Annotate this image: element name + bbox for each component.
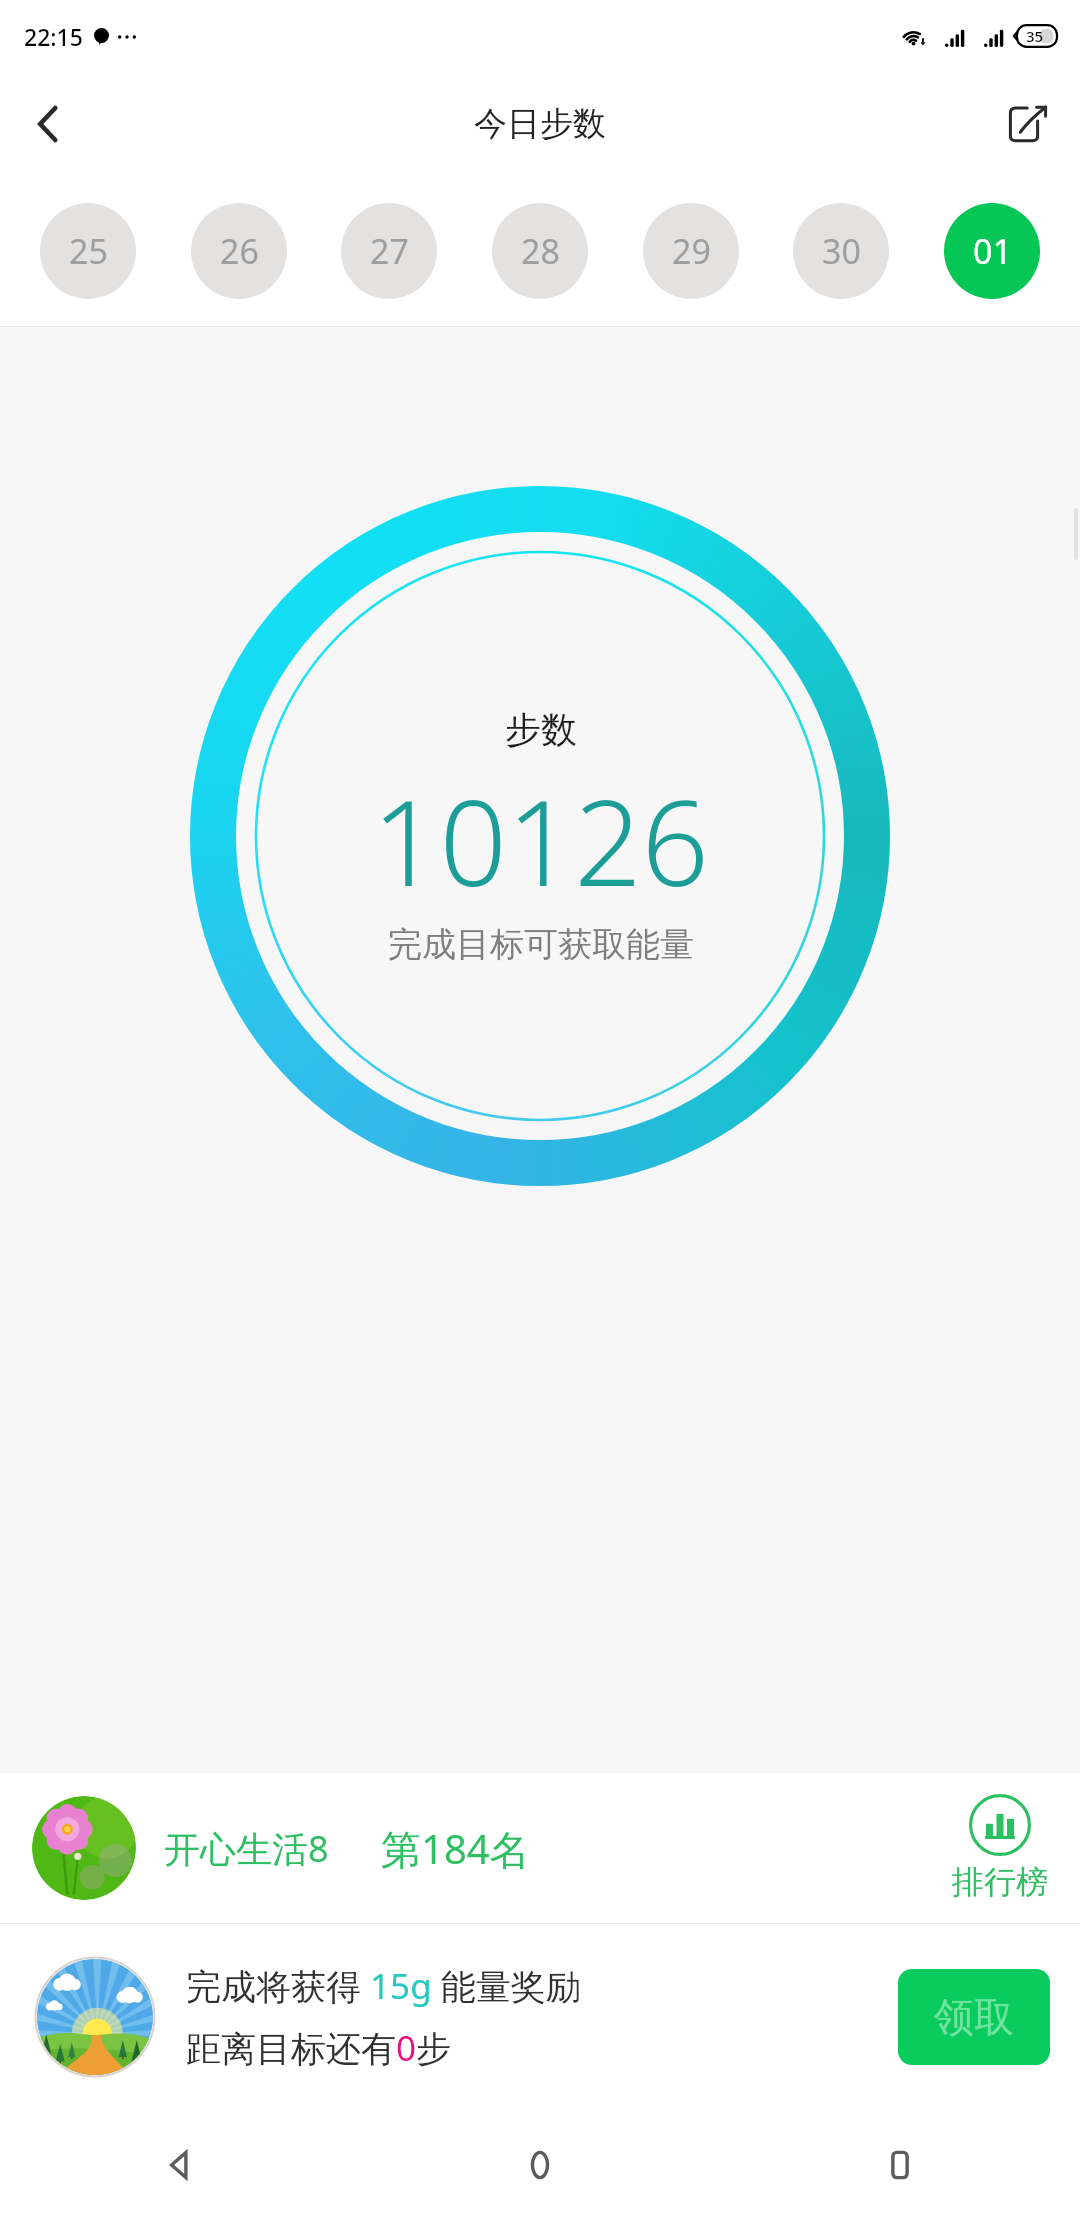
staticText: 步数 xyxy=(505,707,577,752)
button[interactable]: 开心生活8 xyxy=(0,1773,1080,1923)
staticText: 22:15 xyxy=(24,21,83,52)
button[interactable]: Home xyxy=(360,2110,720,2220)
staticText: 开心生活8 xyxy=(164,1824,329,1873)
staticText: 今日步数 xyxy=(474,103,606,145)
staticText: 28 xyxy=(521,228,560,274)
button[interactable]: 26 xyxy=(191,203,287,299)
staticText: 完成目标可获取能量 xyxy=(388,923,694,966)
button[interactable]: 01 xyxy=(944,203,1040,299)
button[interactable]: Share xyxy=(994,90,1062,158)
staticText: 距离目标还有0步 xyxy=(186,2024,452,2072)
staticText: 排行榜 xyxy=(952,1862,1048,1902)
staticText: 领取 xyxy=(934,1992,1014,2042)
staticText: 25 xyxy=(69,228,108,274)
staticText: 35 xyxy=(1026,26,1044,46)
staticText: 第184名 xyxy=(381,1821,530,1876)
button[interactable]: 27 xyxy=(341,203,437,299)
staticText: 10126 xyxy=(372,760,709,921)
staticText: 01 xyxy=(973,228,1012,274)
button[interactable]: 29 xyxy=(643,203,739,299)
staticText: 29 xyxy=(672,228,711,274)
button[interactable]: Recents xyxy=(720,2110,1080,2220)
button[interactable]: Back xyxy=(0,2110,360,2220)
button[interactable]: 28 xyxy=(492,203,588,299)
button[interactable]: Back xyxy=(16,92,80,156)
button[interactable]: 领取 xyxy=(898,1969,1050,2065)
staticText: 完成将获得 15g 能量奖励 xyxy=(186,1962,581,2010)
button[interactable]: 25 xyxy=(40,203,136,299)
staticText: 30 xyxy=(822,228,861,274)
staticText: 26 xyxy=(220,228,259,274)
button[interactable]: 排行榜 xyxy=(946,1794,1054,1902)
button[interactable]: 30 xyxy=(793,203,889,299)
staticText: 27 xyxy=(370,228,409,274)
